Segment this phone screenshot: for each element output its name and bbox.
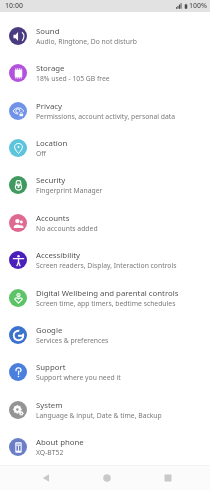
staticText: Off [36, 149, 46, 158]
staticText: Google [36, 325, 63, 336]
button[interactable]: Privacy [0, 92, 210, 129]
staticText: Location [36, 138, 68, 149]
button[interactable]: Location [0, 129, 210, 166]
button[interactable]: Sound [0, 17, 210, 54]
staticText: Privacy [36, 101, 63, 112]
button[interactable]: Digital Wellbeing and parental controls [0, 279, 210, 316]
staticText: Accounts [36, 213, 70, 224]
button[interactable]: Back [26, 469, 66, 487]
staticText: Security [36, 175, 66, 186]
staticText: Language & input, Date & time, Backup [36, 411, 162, 420]
staticText: Permissions, account activity, personal … [36, 112, 176, 121]
staticText: Services & preferences [36, 336, 109, 345]
button[interactable]: Security [0, 166, 210, 204]
button[interactable]: Accounts [0, 204, 210, 241]
button[interactable]: Accessibility [0, 241, 210, 279]
staticText: 100% [189, 1, 207, 11]
staticText: XQ-BT52 [36, 448, 64, 457]
button[interactable]: Support [0, 353, 210, 391]
staticText: System [36, 400, 63, 411]
staticText: Fingerprint Manager [36, 186, 103, 195]
button[interactable]: System [0, 391, 210, 428]
staticText: Support where you need it [36, 373, 121, 382]
staticText: Screen readers, Display, Interaction con… [36, 261, 177, 270]
staticText: Sound [36, 26, 60, 37]
staticText: 18% used - 105 GB free [36, 74, 110, 83]
staticText: Digital Wellbeing and parental controls [36, 288, 179, 299]
button[interactable]: Storage [0, 54, 210, 92]
staticText: 10:00 [5, 1, 23, 11]
staticText: About phone [36, 437, 84, 448]
staticText: Screen time, app timers, bedtime schedul… [36, 299, 176, 308]
staticText: Accessibility [36, 250, 80, 261]
button[interactable]: Home [87, 469, 127, 487]
staticText: Support [36, 362, 66, 373]
button[interactable]: Recent apps [148, 469, 188, 487]
button[interactable]: About phone [0, 428, 210, 465]
staticText: Audio, Ringtone, Do not disturb [36, 37, 137, 46]
button[interactable]: Google [0, 316, 210, 353]
staticText: Storage [36, 63, 65, 74]
staticText: No accounts added [36, 224, 98, 233]
